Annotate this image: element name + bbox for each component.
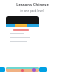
button[interactable]: Screenshot	[0, 67, 5, 72]
button[interactable]	[6, 16, 39, 66]
button[interactable]: Screenshot	[6, 67, 39, 72]
button[interactable]: Screenshot	[39, 67, 47, 72]
staticText: Lessons Chinese	[16, 2, 49, 7]
staticText: in one pack level	[20, 9, 44, 13]
